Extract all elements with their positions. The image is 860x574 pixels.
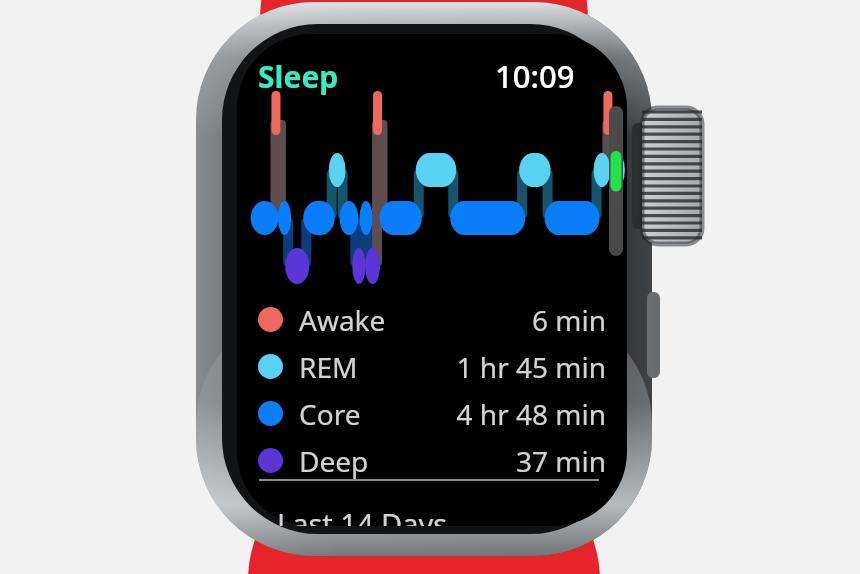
- other: Scroll position: [609, 106, 623, 256]
- staticText: REM: [299, 348, 358, 386]
- button[interactable]: Core: [258, 390, 606, 437]
- button[interactable]: Deep: [258, 437, 606, 484]
- staticText: Core: [299, 395, 361, 433]
- staticText: Awake: [299, 301, 386, 339]
- staticText: 6 min: [531, 301, 606, 339]
- staticText: 4 hr 48 min: [456, 395, 606, 433]
- button[interactable]: REM: [258, 343, 606, 390]
- staticText: 10:09: [495, 55, 575, 97]
- button[interactable]: Last 14 Days: [277, 504, 448, 526]
- staticText: 1 hr 45 min: [456, 348, 606, 386]
- staticText: Deep: [299, 442, 369, 480]
- button[interactable]: Awake: [258, 296, 606, 343]
- staticText: 37 min: [515, 442, 606, 480]
- button[interactable]: Sleep: [258, 56, 339, 97]
